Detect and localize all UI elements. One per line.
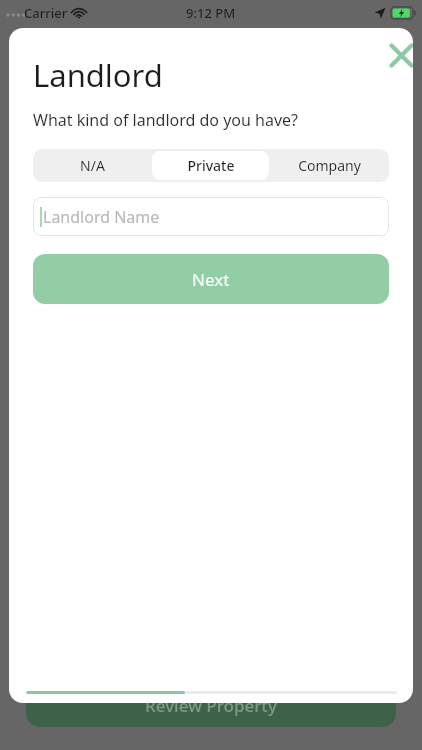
- button[interactable]: Next: [33, 254, 389, 304]
- button[interactable]: Close: [379, 33, 413, 77]
- staticText: Private: [187, 156, 235, 175]
- staticText: Company: [298, 156, 361, 175]
- staticText: N/A: [80, 156, 105, 175]
- staticText: Next: [192, 268, 230, 291]
- staticText: Landlord: [33, 54, 163, 96]
- staticText: 9:12 PM: [186, 4, 236, 22]
- staticText: Review Property: [145, 694, 277, 717]
- staticText: Landlord Name: [43, 206, 160, 228]
- button[interactable]: Company: [271, 151, 388, 180]
- staticText: What kind of landlord do you have?: [33, 109, 299, 131]
- button[interactable]: Private: [152, 151, 269, 180]
- staticText: Carrier: [24, 4, 68, 22]
- button[interactable]: N/A: [34, 151, 150, 180]
- button[interactable]: Landlord Name: [33, 197, 389, 236]
- button[interactable]: Review Property: [26, 683, 396, 727]
